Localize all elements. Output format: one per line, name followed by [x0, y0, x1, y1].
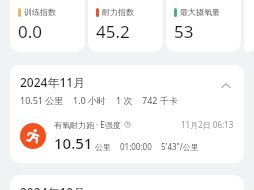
button[interactable]: 2024年10月 — [10, 175, 244, 190]
staticText: 53 — [174, 20, 194, 43]
staticText: 10.51 — [54, 133, 93, 153]
staticText: 45.2 — [96, 20, 130, 43]
button[interactable]: 有氧耐力跑 · E强度 — [10, 117, 244, 163]
button[interactable]: 2024年11月 — [10, 65, 244, 110]
button[interactable]: 最大摄氧量 — [166, 0, 241, 52]
button[interactable]: 耐力指数 — [88, 0, 163, 52]
button[interactable]: 训练指数 — [10, 0, 85, 52]
staticText: 742 千卡 — [142, 94, 178, 106]
staticText: 公里 — [95, 142, 111, 152]
button[interactable]: Collapse — [218, 78, 234, 94]
staticText: 2024年11月 — [20, 74, 86, 90]
staticText: 1.0 小时 — [73, 94, 107, 106]
staticText: 01:00:00 — [120, 141, 152, 152]
staticText: 11月2日 06:13 — [181, 119, 234, 130]
staticText: 10.51 公里 — [20, 94, 64, 106]
staticText: 1 次 — [116, 94, 133, 106]
staticText: 耐力指数 — [102, 7, 134, 17]
staticText: 训练指数 — [24, 7, 56, 17]
staticText: 5'43"/公里 — [161, 141, 199, 152]
staticText: 最大摄氧量 — [180, 7, 220, 17]
staticText: 有氧耐力跑 · E强度 — [54, 119, 121, 130]
staticText: 2024年10月 — [20, 184, 86, 190]
staticText: 0.0 — [18, 20, 43, 43]
staticText: 正常 — [18, 45, 31, 46]
